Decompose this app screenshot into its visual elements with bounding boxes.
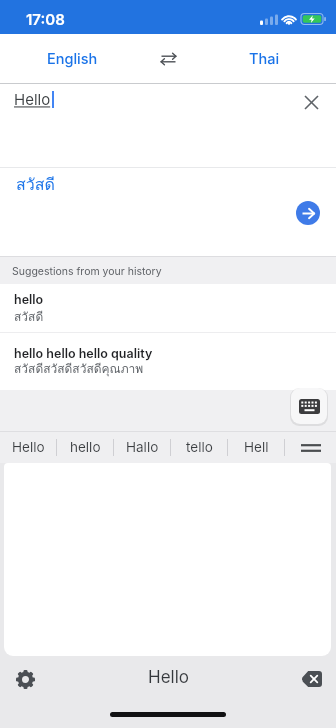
staticText: Hell [244,439,269,455]
button[interactable]: Hell [228,432,284,463]
button[interactable]: Hallo [114,432,170,463]
staticText: สวัสดี [16,172,55,197]
button[interactable]: English [0,34,144,83]
staticText: Hallo [126,439,159,455]
staticText: Hello [14,90,51,108]
button[interactable] [144,34,192,83]
button[interactable]: Hello [0,432,56,463]
button[interactable] [291,388,327,424]
button[interactable]: Thai [192,34,336,83]
button[interactable]: hello hello hello quality [0,333,336,390]
button[interactable]: hello [57,432,113,463]
staticText: สวัสดี [14,307,44,326]
button[interactable]: hello [0,284,336,332]
staticText: tello [186,439,213,455]
staticText: Thai [249,50,280,68]
button[interactable] [297,88,325,116]
staticText: สวัสดีสวัสดีสวัสดีคุณภาพ [14,359,144,378]
button[interactable] [285,432,336,463]
staticText: hello [14,292,44,307]
staticText: hello [70,439,101,455]
staticText: Hello [12,439,45,455]
button[interactable] [299,666,325,692]
staticText: Hello [148,667,189,688]
staticText: English [47,50,98,68]
button[interactable]: tello [171,432,227,463]
staticText: Suggestions from your history [12,265,162,278]
staticText: hello hello hello quality [14,346,153,361]
button[interactable] [13,667,37,691]
staticText: 17:08 [26,10,65,28]
button[interactable] [296,201,320,225]
